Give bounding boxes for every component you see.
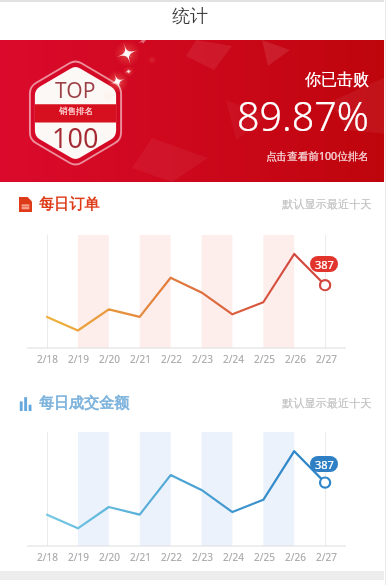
staticText: 统计 [172,5,208,28]
staticText: 每日订单 [39,195,99,214]
staticText: 2/19 [68,352,89,366]
button[interactable]: 每日订单 [0,182,384,226]
button[interactable]: 387 [310,456,338,472]
staticText: 2/22 [161,550,182,564]
staticText: 默认显示最近十天 [282,396,372,410]
button[interactable]: TOP [0,40,384,182]
button[interactable]: 387 [310,256,338,272]
staticText: 2/24 [223,550,244,564]
staticText: TOP [55,76,96,105]
staticText: 销售排名 [59,106,93,117]
staticText: 每日成交金额 [39,394,129,413]
staticText: 2/26 [285,550,306,564]
staticText: 2/25 [254,550,275,564]
staticText: 2/24 [223,352,244,366]
staticText: 100 [52,119,99,156]
staticText: 点击查看前100位排名 [266,149,369,163]
staticText: 2/21 [130,550,151,564]
staticText: 你已击败 [305,70,369,90]
staticText: 2/22 [161,352,182,366]
staticText: 2/23 [192,352,213,366]
staticText: 387 [315,257,334,272]
staticText: 2/26 [285,352,306,366]
staticText: 2/27 [316,550,337,564]
staticText: 2/19 [68,550,89,564]
staticText: 2/21 [130,352,151,366]
button[interactable]: 每日成交金额 [0,381,384,425]
staticText: 89.87% [237,89,369,143]
staticText: 默认显示最近十天 [282,197,372,211]
staticText: 2/18 [37,550,58,564]
staticText: 2/18 [37,352,58,366]
staticText: 2/20 [99,352,120,366]
staticText: 387 [315,457,334,472]
staticText: 2/27 [316,352,337,366]
staticText: 2/20 [99,550,120,564]
staticText: 2/25 [254,352,275,366]
staticText: 2/23 [192,550,213,564]
